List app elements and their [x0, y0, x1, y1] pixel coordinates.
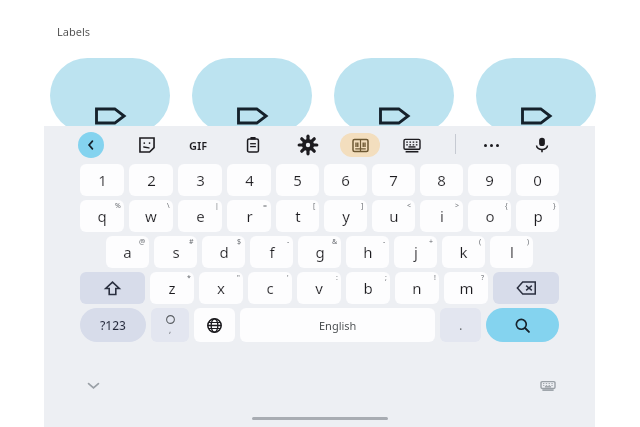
staticText: =	[263, 201, 268, 211]
button[interactable]: ?123	[80, 308, 146, 342]
button[interactable]: 8	[420, 164, 463, 196]
button[interactable]: w	[129, 200, 173, 232]
staticText: -	[383, 237, 386, 247]
button[interactable]: Emoji	[151, 308, 189, 342]
button[interactable]: Voice input	[529, 132, 555, 158]
button[interactable]: Settings	[295, 132, 321, 158]
button[interactable]: k	[442, 236, 485, 268]
button[interactable]: x	[199, 272, 243, 304]
button[interactable]: Keyboard modes	[399, 132, 425, 158]
staticText: >	[455, 201, 460, 211]
button[interactable]: Translate	[340, 133, 380, 157]
button[interactable]: 3	[178, 164, 222, 196]
staticText: u	[389, 206, 399, 226]
staticText: z	[168, 278, 176, 298]
button[interactable]: 9	[468, 164, 511, 196]
button[interactable]: l	[490, 236, 533, 268]
button[interactable]: i	[420, 200, 463, 232]
staticText: ;	[385, 273, 387, 283]
staticText: o	[485, 206, 495, 226]
staticText: "	[237, 273, 240, 283]
button[interactable]: q	[80, 200, 124, 232]
button[interactable]: Back	[78, 132, 104, 158]
button[interactable]: j	[394, 236, 437, 268]
button[interactable]: .	[440, 308, 481, 342]
staticText: +	[429, 237, 434, 247]
button[interactable]: e	[178, 200, 222, 232]
button[interactable]: z	[150, 272, 194, 304]
button[interactable]: 7	[372, 164, 415, 196]
button[interactable]: v	[297, 272, 341, 304]
button[interactable]: p	[516, 200, 559, 232]
button[interactable]: Search	[486, 308, 559, 342]
staticText: |	[215, 201, 219, 211]
button[interactable]: d	[202, 236, 245, 268]
staticText: p	[533, 206, 543, 226]
button[interactable]: h	[346, 236, 389, 268]
staticText: ?	[481, 273, 485, 283]
button[interactable]: English	[240, 308, 435, 342]
staticText: (	[479, 237, 482, 247]
staticText: n	[412, 278, 422, 298]
button[interactable]: Keyboard switcher	[537, 374, 559, 396]
staticText: 8	[437, 170, 446, 190]
button[interactable]: c	[248, 272, 292, 304]
button[interactable]: Stickers	[134, 132, 160, 158]
staticText: ,	[169, 324, 172, 335]
button[interactable]: u	[372, 200, 415, 232]
staticText: b	[363, 278, 373, 298]
button[interactable]: o	[468, 200, 511, 232]
button[interactable]: Change language	[194, 308, 235, 342]
staticText: &	[332, 237, 338, 247]
staticText: x	[217, 278, 225, 298]
staticText: :	[336, 273, 338, 283]
button[interactable]: n	[395, 272, 439, 304]
staticText: 7	[389, 170, 398, 190]
staticText: v	[315, 278, 323, 298]
staticText: $	[237, 237, 242, 247]
button[interactable]: y	[324, 200, 367, 232]
button[interactable]: Backspace	[493, 272, 559, 304]
button[interactable]: More options	[477, 132, 505, 158]
button[interactable]: Shift	[80, 272, 145, 304]
staticText: 3	[196, 170, 205, 190]
staticText: \	[167, 201, 170, 211]
button[interactable]: b	[346, 272, 390, 304]
staticText: '	[287, 273, 289, 283]
staticText: %	[115, 201, 121, 211]
button[interactable]: g	[298, 236, 341, 268]
button[interactable]: Label	[50, 58, 170, 133]
staticText: #	[189, 237, 194, 247]
button[interactable]: s	[154, 236, 197, 268]
button[interactable]: Hide keyboard	[80, 372, 106, 398]
button[interactable]: GIF	[182, 132, 214, 158]
staticText: @	[139, 237, 146, 247]
button[interactable]: 0	[516, 164, 559, 196]
button[interactable]: Clipboard	[240, 132, 266, 158]
button[interactable]: f	[250, 236, 293, 268]
button[interactable]: 4	[227, 164, 271, 196]
staticText: ]	[361, 201, 364, 211]
staticText: !	[434, 273, 436, 283]
button[interactable]: 2	[129, 164, 173, 196]
button[interactable]: r	[227, 200, 271, 232]
button[interactable]: 1	[80, 164, 124, 196]
button[interactable]: Label	[334, 58, 454, 133]
button[interactable]: 6	[324, 164, 367, 196]
staticText: g	[315, 242, 325, 262]
staticText: j	[414, 242, 418, 262]
button[interactable]: m	[444, 272, 488, 304]
button[interactable]: Label	[192, 58, 312, 133]
staticText: 2	[147, 170, 156, 190]
button[interactable]: t	[276, 200, 319, 232]
button[interactable]: a	[106, 236, 149, 268]
staticText: Labels	[57, 24, 91, 39]
button[interactable]: Label	[476, 58, 596, 133]
staticText: )	[527, 237, 530, 247]
staticText: y	[342, 206, 350, 226]
button[interactable]: 5	[276, 164, 319, 196]
staticText: -	[287, 237, 290, 247]
staticText: {	[505, 201, 508, 211]
staticText: s	[172, 242, 180, 262]
staticText: c	[266, 278, 274, 298]
